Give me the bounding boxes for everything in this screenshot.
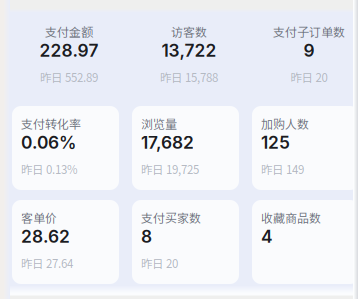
button[interactable]: 支付金额 <box>9 0 129 94</box>
staticText: 支付转化率 <box>21 115 81 132</box>
staticText: 加购人数 <box>261 115 309 132</box>
staticText: 昨日 20 <box>141 255 178 271</box>
staticText: 昨日 0.13% <box>21 161 78 177</box>
staticText: 昨日 149 <box>261 161 304 177</box>
staticText: 228.97 <box>39 40 98 61</box>
staticText: 浏览量 <box>141 115 177 132</box>
staticText: 支付子订单数 <box>273 23 345 40</box>
staticText: 9 <box>303 40 314 61</box>
staticText: 昨日 552.89 <box>40 69 98 85</box>
staticText: 客单价 <box>21 209 57 226</box>
staticText: 125 <box>261 132 290 153</box>
staticText: 8 <box>141 226 152 247</box>
staticText: 支付买家数 <box>141 209 201 226</box>
staticText: 0.06% <box>21 132 76 153</box>
staticText: 昨日 19,725 <box>141 161 199 177</box>
staticText: 访客数 <box>171 23 207 40</box>
staticText: 支付金额 <box>45 23 93 40</box>
button[interactable]: 加购人数 <box>252 106 358 190</box>
button[interactable]: 客单价 <box>12 200 119 284</box>
button[interactable]: 支付转化率 <box>12 106 119 190</box>
staticText: 4 <box>261 226 273 247</box>
staticText: 13,722 <box>161 40 216 61</box>
button[interactable]: 支付买家数 <box>132 200 239 284</box>
button[interactable]: 支付子订单数 <box>249 0 358 94</box>
staticText: 昨日 27.64 <box>21 255 73 271</box>
staticText: 收藏商品数 <box>261 209 321 226</box>
button[interactable]: 浏览量 <box>132 106 239 190</box>
staticText: 昨日 15,788 <box>160 69 218 85</box>
staticText: 17,682 <box>141 132 194 153</box>
button[interactable]: 访客数 <box>129 0 249 94</box>
button[interactable]: 收藏商品数 <box>252 200 358 284</box>
staticText: 昨日 20 <box>290 69 327 85</box>
staticText: 28.62 <box>21 226 70 247</box>
